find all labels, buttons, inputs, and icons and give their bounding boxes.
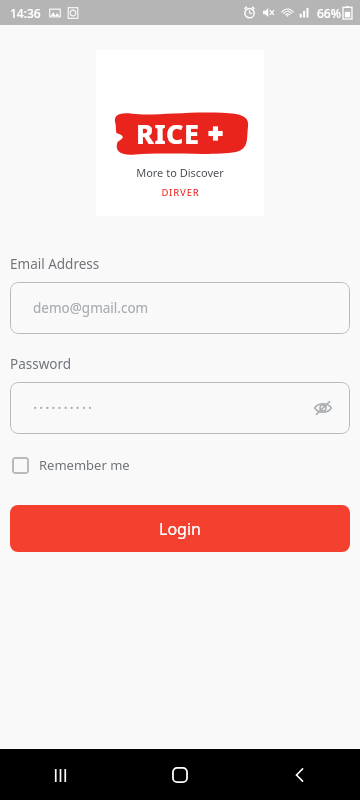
button[interactable]: Remember me bbox=[11, 453, 131, 477]
staticText: Password bbox=[10, 355, 72, 373]
staticText: DIRVER bbox=[161, 186, 200, 199]
staticText: demo@gmail.com bbox=[33, 299, 149, 317]
button[interactable]: Back bbox=[276, 751, 324, 799]
button[interactable]: Home bbox=[156, 751, 204, 799]
staticText: 66% bbox=[317, 5, 341, 21]
staticText: Email Address bbox=[10, 255, 100, 273]
staticText: More to Discover bbox=[136, 165, 224, 180]
button[interactable]: Recent apps bbox=[36, 751, 84, 799]
staticText: 14:36 bbox=[10, 5, 41, 21]
staticText: Remember me bbox=[39, 456, 130, 474]
staticText: ·········· bbox=[33, 397, 94, 419]
button[interactable]: ·········· bbox=[10, 382, 350, 434]
button[interactable]: Login bbox=[10, 505, 350, 552]
staticText: RICE bbox=[136, 115, 200, 152]
button[interactable]: demo@gmail.com bbox=[10, 282, 350, 334]
button[interactable]: Show password bbox=[311, 396, 335, 420]
staticText: Login bbox=[159, 518, 201, 540]
